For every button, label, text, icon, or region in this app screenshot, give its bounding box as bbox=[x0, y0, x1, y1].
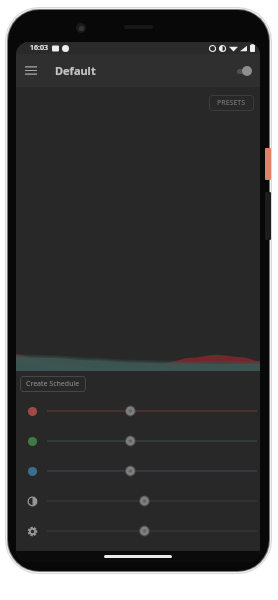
button[interactable] bbox=[16, 516, 260, 546]
staticText: Create Schedule bbox=[26, 379, 80, 389]
staticText: 16:03 bbox=[30, 43, 48, 53]
button[interactable]: PRESETS bbox=[209, 95, 254, 111]
staticText: Default bbox=[55, 63, 96, 78]
button[interactable] bbox=[16, 396, 260, 426]
button[interactable] bbox=[16, 486, 260, 516]
button[interactable] bbox=[16, 426, 260, 456]
button[interactable]: Open navigation menu bbox=[16, 54, 46, 87]
staticText: PRESETS bbox=[217, 98, 246, 108]
button[interactable]: Create Schedule bbox=[20, 376, 86, 392]
button[interactable] bbox=[16, 456, 260, 486]
button[interactable]: Enable profile bbox=[229, 54, 259, 87]
